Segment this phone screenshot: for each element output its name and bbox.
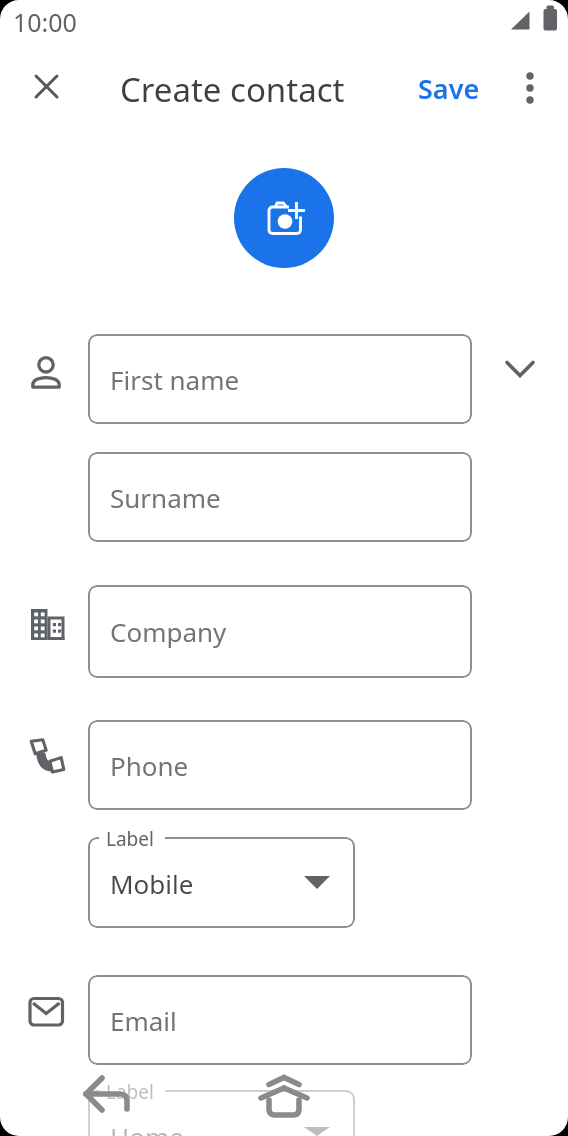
button[interactable] bbox=[23, 64, 71, 112]
button[interactable] bbox=[252, 1064, 316, 1128]
button[interactable]: Save bbox=[406, 64, 492, 112]
button[interactable]: Phone bbox=[88, 720, 472, 810]
staticText: Label bbox=[106, 1079, 154, 1105]
button[interactable] bbox=[78, 1068, 142, 1132]
staticText: First name bbox=[110, 362, 240, 397]
button[interactable] bbox=[496, 346, 544, 394]
button[interactable] bbox=[234, 168, 334, 268]
staticText: 10:00 bbox=[13, 5, 77, 39]
button[interactable]: Company bbox=[88, 585, 472, 678]
button[interactable]: First name bbox=[88, 334, 472, 424]
staticText: Company bbox=[110, 614, 227, 649]
staticText: Home bbox=[110, 1119, 184, 1136]
staticText: Create contact bbox=[120, 67, 345, 112]
staticText: Save bbox=[418, 70, 480, 107]
button[interactable] bbox=[506, 64, 554, 112]
button[interactable]: Surname bbox=[88, 452, 472, 542]
staticText: Email bbox=[110, 1003, 177, 1038]
staticText: Mobile bbox=[110, 866, 194, 901]
button[interactable] bbox=[88, 837, 355, 928]
button[interactable]: Email bbox=[88, 975, 472, 1065]
staticText: Phone bbox=[110, 748, 189, 783]
staticText: Label bbox=[106, 826, 154, 852]
staticText: Surname bbox=[110, 480, 221, 515]
